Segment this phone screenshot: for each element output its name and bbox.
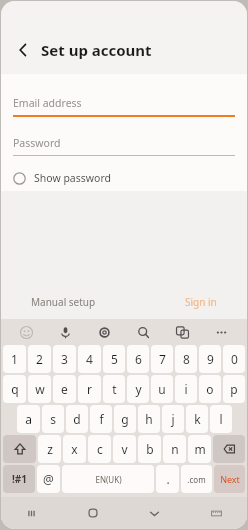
- button[interactable]: EN(UK): [62, 465, 154, 493]
- staticText: j: [171, 411, 175, 427]
- staticText: .com: [187, 474, 206, 485]
- button[interactable]: o: [199, 375, 221, 403]
- button[interactable]: 9: [199, 345, 221, 373]
- button[interactable]: Emoji: [7, 319, 46, 345]
- staticText: @: [43, 471, 54, 487]
- button[interactable]: l: [210, 405, 232, 433]
- button[interactable]: Back: [11, 38, 35, 62]
- button[interactable]: j: [162, 405, 184, 433]
- button[interactable]: 6: [127, 345, 149, 373]
- staticText: Email address: [13, 96, 82, 110]
- staticText: l: [219, 411, 223, 427]
- button[interactable]: n: [163, 435, 186, 463]
- button[interactable]: Sign in: [185, 295, 217, 309]
- button[interactable]: 7: [151, 345, 173, 373]
- button[interactable]: u: [151, 375, 173, 403]
- staticText: s: [50, 411, 56, 427]
- button[interactable]: Settings: [85, 319, 124, 345]
- button[interactable]: c: [88, 435, 111, 463]
- button[interactable]: s: [42, 405, 64, 433]
- button[interactable]: 2: [28, 345, 51, 373]
- staticText: c: [97, 441, 103, 457]
- button[interactable]: 3: [53, 345, 76, 373]
- button[interactable]: q: [3, 375, 26, 403]
- staticText: 0: [231, 351, 238, 367]
- staticText: 3: [61, 351, 68, 367]
- staticText: .: [166, 471, 170, 487]
- staticText: Sign in: [185, 295, 217, 309]
- button[interactable]: p: [223, 375, 245, 403]
- staticText: 8: [183, 351, 190, 367]
- button[interactable]: 8: [175, 345, 197, 373]
- button[interactable]: w: [28, 375, 51, 403]
- staticText: f: [99, 411, 104, 427]
- button[interactable]: Recents: [1, 497, 62, 529]
- button[interactable]: !#1: [3, 465, 35, 493]
- button[interactable]: Home: [62, 497, 123, 529]
- button[interactable]: .com: [181, 465, 212, 493]
- staticText: d: [73, 411, 81, 427]
- button[interactable]: .: [156, 465, 179, 493]
- button[interactable]: 4: [78, 345, 101, 373]
- button[interactable]: k: [186, 405, 208, 433]
- button[interactable]: d: [66, 405, 88, 433]
- button[interactable]: m: [188, 435, 211, 463]
- button[interactable]: 0: [223, 345, 245, 373]
- staticText: 4: [86, 351, 93, 367]
- staticText: p: [230, 381, 238, 397]
- button[interactable]: Shift: [3, 435, 36, 463]
- staticText: !#1: [12, 472, 27, 486]
- staticText: Password: [13, 136, 61, 150]
- staticText: 7: [159, 351, 166, 367]
- staticText: i: [184, 381, 188, 397]
- staticText: 6: [135, 351, 142, 367]
- button[interactable]: x: [63, 435, 86, 463]
- button[interactable]: b: [138, 435, 161, 463]
- button[interactable]: t: [103, 375, 125, 403]
- staticText: EN(UK): [95, 474, 122, 485]
- staticText: v: [121, 441, 128, 457]
- staticText: b: [146, 441, 154, 457]
- button[interactable]: Show password: [13, 169, 111, 187]
- staticText: q: [11, 381, 19, 397]
- button[interactable]: Next: [214, 465, 245, 493]
- button[interactable]: Backspace: [213, 435, 245, 463]
- button[interactable]: More options: [202, 319, 241, 345]
- staticText: z: [47, 441, 53, 457]
- button[interactable]: v: [113, 435, 136, 463]
- button[interactable]: i: [175, 375, 197, 403]
- button[interactable]: z: [38, 435, 61, 463]
- staticText: 5: [111, 351, 118, 367]
- button[interactable]: e: [53, 375, 76, 403]
- button[interactable]: Manual setup: [31, 295, 185, 309]
- staticText: Manual setup: [31, 295, 96, 309]
- button[interactable]: 5: [103, 345, 125, 373]
- button[interactable]: Hide keyboard: [123, 497, 185, 529]
- staticText: Set up account: [41, 40, 152, 60]
- staticText: e: [61, 381, 68, 397]
- button[interactable]: y: [127, 375, 149, 403]
- button[interactable]: a: [17, 405, 40, 433]
- button[interactable]: r: [78, 375, 101, 403]
- button[interactable]: h: [138, 405, 160, 433]
- staticText: m: [194, 441, 206, 457]
- button[interactable]: @: [37, 465, 60, 493]
- button[interactable]: Voice input: [46, 319, 85, 345]
- button[interactable]: Email address: [13, 96, 235, 117]
- button[interactable]: Search: [124, 319, 163, 345]
- staticText: 2: [36, 351, 43, 367]
- staticText: u: [158, 381, 166, 397]
- staticText: t: [112, 381, 117, 397]
- staticText: k: [194, 411, 201, 427]
- staticText: n: [171, 441, 179, 457]
- button[interactable]: g: [114, 405, 136, 433]
- button[interactable]: Keyboard layout: [185, 497, 247, 529]
- button[interactable]: f: [90, 405, 112, 433]
- staticText: x: [71, 441, 78, 457]
- staticText: Show password: [34, 171, 111, 185]
- button[interactable]: 1: [3, 345, 26, 373]
- button[interactable]: Password: [13, 136, 235, 156]
- staticText: h: [145, 411, 153, 427]
- staticText: y: [135, 381, 142, 397]
- button[interactable]: Translate: [163, 319, 202, 345]
